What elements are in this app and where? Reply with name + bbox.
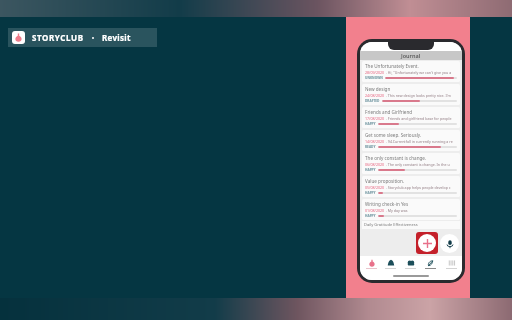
staticText: . Hi, "Unfortunately we can't give you a — [385, 70, 452, 75]
button[interactable]: Value proposition. — [362, 176, 460, 197]
staticText: Revisit — [102, 32, 131, 43]
staticText: READY — [365, 145, 376, 149]
staticText: DRAFTED — [365, 99, 380, 103]
staticText: . This new design looks pretty nice. I'm — [385, 93, 451, 98]
staticText: Daily Gratitude Effectiveness — [364, 222, 418, 227]
button[interactable]: Friends and Girlfriend — [362, 107, 460, 128]
staticText: Friends and Girlfriend — [365, 109, 413, 115]
button[interactable]: Add entry — [418, 234, 436, 252]
button[interactable]: New design — [362, 84, 460, 105]
staticText: Journal — [401, 52, 421, 59]
staticText: HAPPY — [365, 122, 376, 126]
staticText: . Friends and girlfriend base for people — [385, 116, 452, 121]
staticText: Value proposition. — [365, 178, 405, 184]
button[interactable]: Write — [421, 258, 440, 271]
staticText: 06/08/2020 — [365, 162, 385, 167]
button[interactable]: Voice note — [440, 234, 459, 253]
staticText: HAPPY — [365, 191, 376, 195]
button[interactable]: Reminders — [382, 256, 399, 272]
staticText: The Unfortunately Event. — [365, 63, 419, 69]
button[interactable]: Get some sleep. Seriously. — [362, 130, 460, 151]
button[interactable]: More — [443, 256, 460, 272]
button[interactable]: Bottle — [363, 256, 380, 272]
button[interactable]: STORYCLUB — [8, 28, 157, 47]
staticText: UNKNOWN — [365, 76, 383, 80]
staticText: . 94.Currentfall in currently running a … — [385, 139, 453, 144]
staticText: 14/08/2020 — [365, 139, 385, 144]
button[interactable]: The Unfortunately Event. — [362, 61, 460, 82]
staticText: . Storyclub app helps people develop c — [385, 185, 451, 190]
staticText: Writing check-in Yes — [365, 201, 409, 207]
staticText: . My day was — [385, 208, 408, 213]
staticText: HAPPY — [365, 168, 376, 172]
staticText: 05/08/2020 — [365, 185, 385, 190]
staticText: New design — [365, 86, 391, 92]
staticText: STORYCLUB — [32, 32, 84, 43]
staticText: 24/08/2020 — [365, 93, 385, 98]
button[interactable]: Writing check-in Yes — [362, 199, 460, 220]
staticText: 17/08/2020 — [365, 116, 385, 121]
staticText: Get some sleep. Seriously. — [365, 132, 422, 138]
staticText: 28/09/2020 — [365, 70, 385, 75]
staticText: The only constant is change. — [365, 155, 427, 161]
button[interactable]: The only constant is change. — [362, 153, 460, 174]
staticText: 01/08/2020 — [365, 208, 385, 213]
staticText: HAPPY — [365, 214, 376, 218]
button[interactable]: Thoughts — [402, 256, 419, 272]
staticText: . The only constant is change. In the u — [385, 162, 450, 167]
